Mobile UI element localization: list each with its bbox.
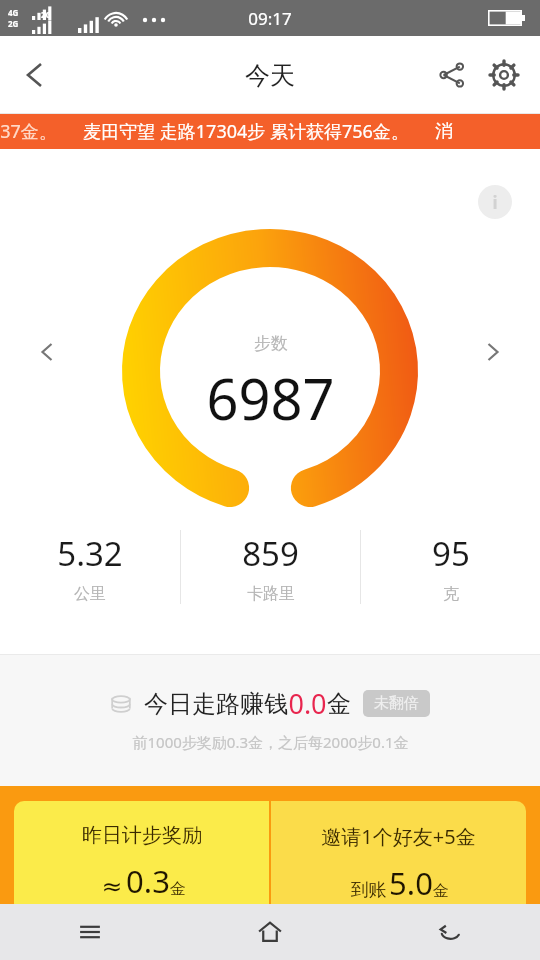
staticText: 859 (242, 531, 299, 576)
staticText: 到账 (348, 877, 389, 902)
staticText: 37金。 (0, 119, 57, 144)
button[interactable]: Back (6, 47, 62, 103)
staticText: 6987 (206, 360, 335, 436)
staticText: 克 (443, 584, 459, 604)
staticText: 步数 (254, 333, 288, 354)
staticText: i (492, 191, 498, 214)
button[interactable]: 859 (181, 513, 360, 621)
button[interactable]: Previous day (30, 335, 64, 369)
button[interactable]: Next day (476, 335, 510, 369)
staticText: ≈ (98, 868, 126, 902)
staticText: 0.3 (126, 860, 170, 902)
staticText: 09:17 (248, 7, 292, 30)
staticText: 0.0 (288, 685, 327, 722)
staticText: 邀请1个好友+5金 (321, 823, 476, 850)
button[interactable]: 5.32 (0, 513, 180, 621)
staticText: 昨日计步奖励 (82, 823, 202, 848)
staticText: 2G (8, 18, 19, 29)
staticText: 消 (435, 120, 453, 143)
staticText: 未翻倍 (374, 694, 419, 713)
staticText: 麦田守望 走路17304步 累计获得756金。 (83, 119, 409, 144)
staticText: 4G (8, 7, 19, 18)
button[interactable]: Home (180, 904, 360, 960)
staticText: 金 (433, 881, 449, 901)
button[interactable]: 37金。 (0, 114, 540, 149)
button[interactable]: Back (360, 904, 540, 960)
staticText: 金 (327, 689, 351, 719)
staticText: 95 (432, 531, 470, 576)
staticText: 今日走路赚钱 (144, 689, 288, 719)
staticText: 今天 (245, 60, 295, 91)
button[interactable]: Menu (0, 904, 180, 960)
button[interactable]: 今日走路赚钱 (0, 654, 540, 786)
button[interactable]: 邀请1个好友+5金 (271, 801, 526, 904)
staticText: 5.0 (389, 862, 433, 904)
staticText: 前1000步奖励0.3金，之后每2000步0.1金 (132, 732, 409, 752)
button[interactable]: 昨日计步奖励 (14, 801, 269, 904)
button[interactable]: Share (426, 49, 478, 101)
button[interactable]: 95 (361, 513, 540, 621)
staticText: 2G (41, 9, 52, 20)
button[interactable]: Info (478, 185, 512, 219)
staticText: 金 (170, 879, 186, 899)
button[interactable]: 未翻倍 (374, 694, 419, 713)
button[interactable]: Settings (478, 49, 530, 101)
staticText: 卡路里 (247, 584, 295, 604)
staticText: 5.32 (57, 531, 123, 576)
staticText: 公里 (74, 584, 106, 604)
